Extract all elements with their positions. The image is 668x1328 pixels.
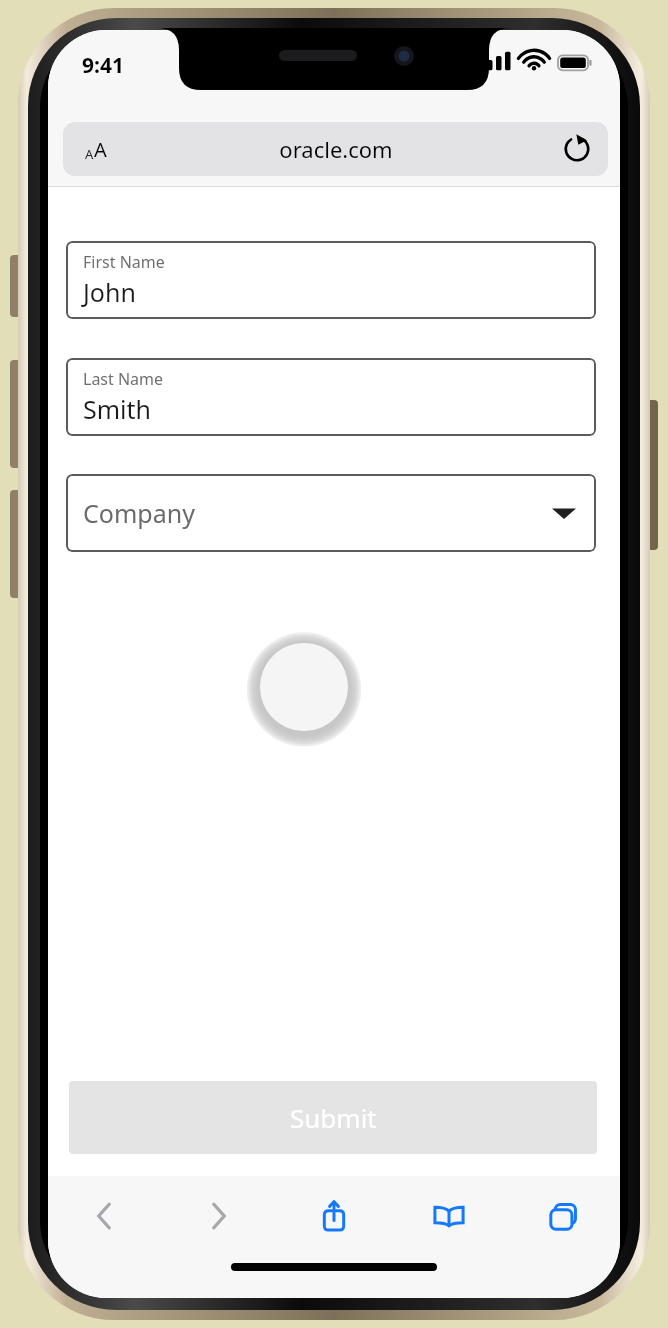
staticText: A: [85, 145, 94, 163]
button[interactable]: Back: [64, 1181, 144, 1251]
button[interactable]: First Name: [66, 241, 596, 319]
button[interactable]: Submit: [69, 1081, 597, 1154]
staticText: John: [83, 275, 136, 309]
button[interactable]: Last Name: [66, 358, 596, 436]
button[interactable]: Text size options: [79, 130, 113, 169]
staticText: Company: [83, 496, 195, 530]
button[interactable]: Bookmarks: [409, 1181, 489, 1251]
staticText: A: [94, 136, 107, 163]
staticText: Last Name: [83, 368, 164, 390]
button[interactable]: Tabs: [524, 1181, 604, 1251]
staticText: 9:41: [82, 51, 124, 80]
button[interactable]: Text size options: [63, 122, 608, 176]
staticText: First Name: [83, 251, 165, 273]
button[interactable]: Forward: [179, 1181, 259, 1251]
staticText: oracle.com: [279, 134, 393, 164]
staticText: Smith: [83, 392, 152, 426]
staticText: Submit: [290, 1100, 377, 1135]
button[interactable]: Reload page: [560, 132, 594, 166]
button[interactable]: Company: [66, 474, 596, 552]
button[interactable]: Share: [294, 1181, 374, 1251]
